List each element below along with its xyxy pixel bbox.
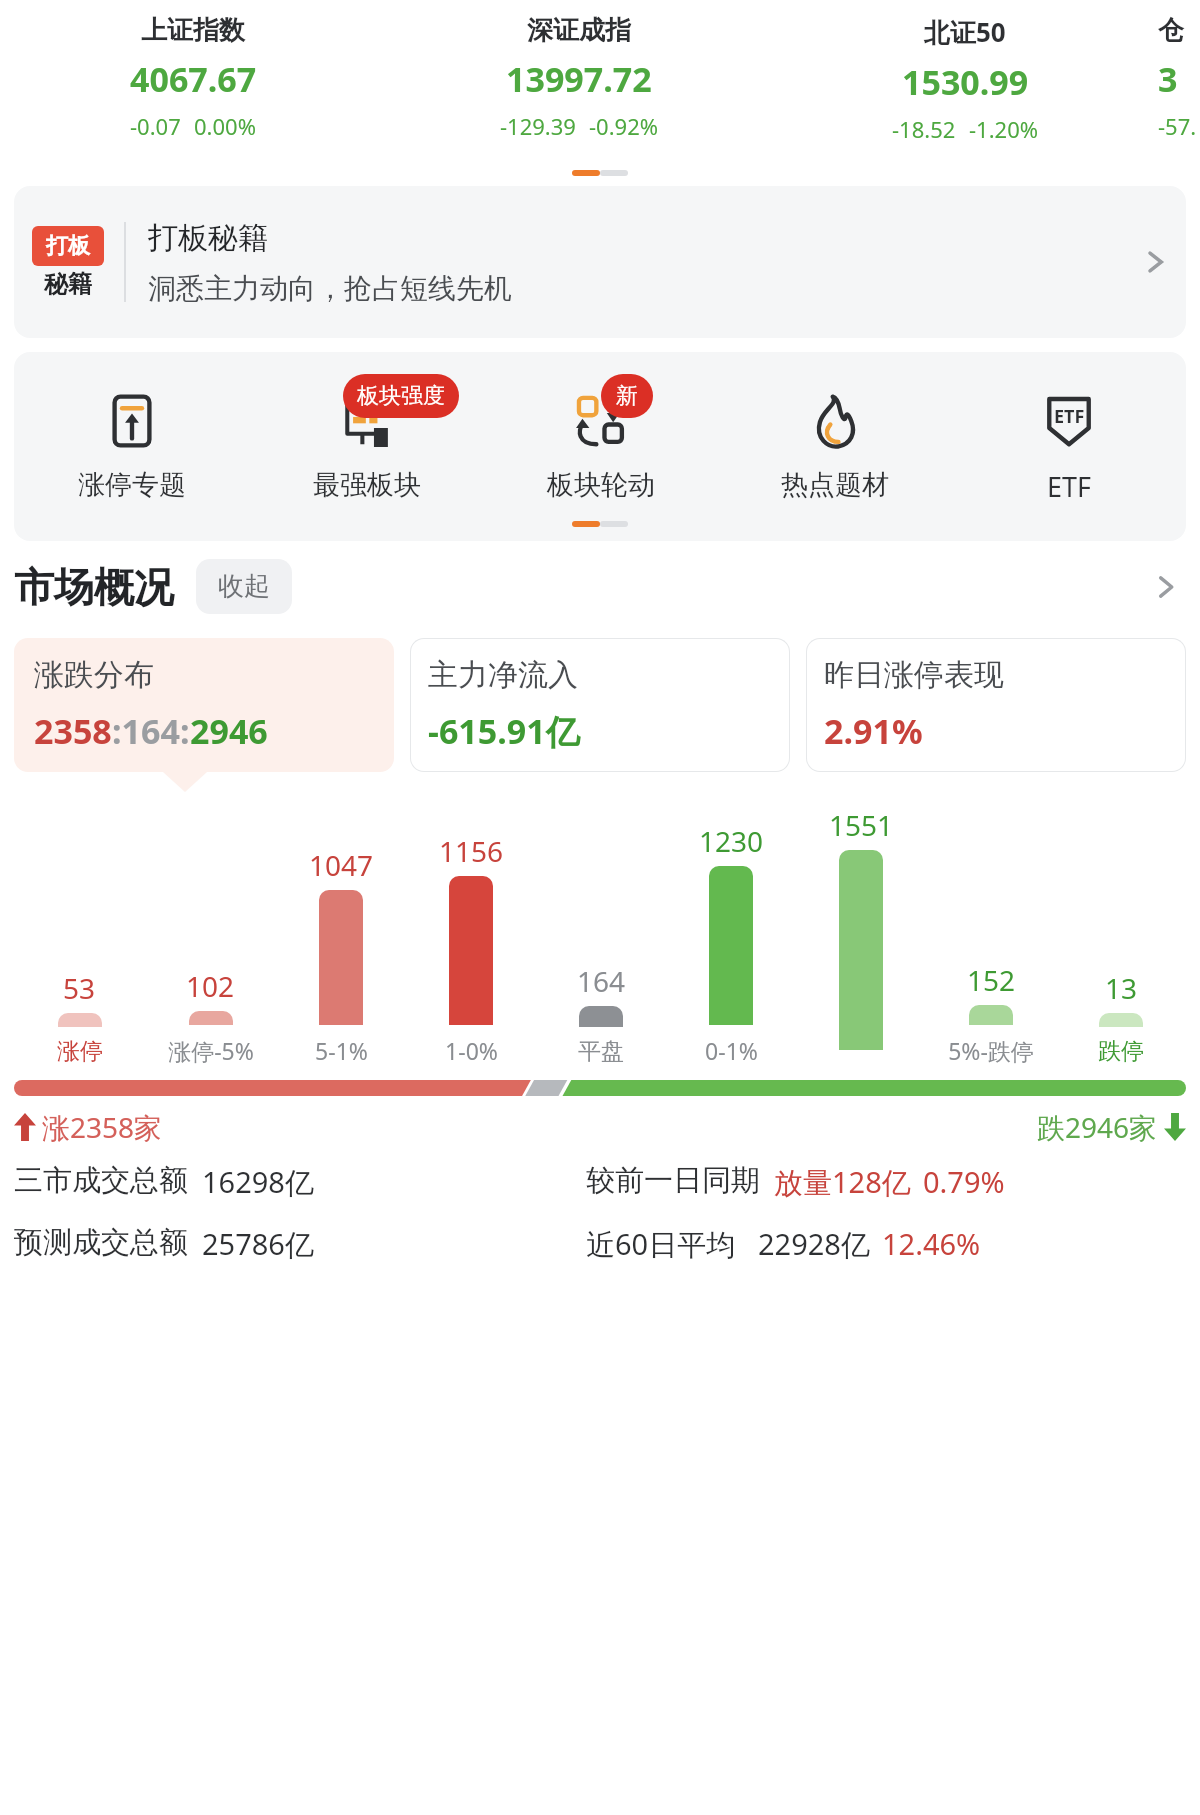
button[interactable]: 涨停专题 [14,378,249,502]
staticText: 16298亿 [202,1162,314,1202]
staticText: 涨停 [57,1037,103,1066]
button[interactable]: 上证指数 [0,14,386,141]
staticText: 预测成交总额 [14,1224,188,1261]
staticText: ETF [1047,468,1092,505]
staticText: 深证成指 [527,14,631,47]
staticText: 主力净流入 [428,656,578,694]
staticText: 2.91% [824,708,923,754]
button[interactable]: 热点题材 [718,378,952,502]
button[interactable]: 新 [484,378,718,502]
staticText: 收起 [218,570,270,603]
staticText: 涨停专题 [78,468,186,502]
staticText: 5-1% [315,1035,368,1066]
staticText: ETF [1054,404,1085,429]
staticText: 2946 [190,708,268,754]
staticText: 0.00% [194,111,256,141]
staticText: 北证50 [924,14,1006,50]
staticText: 1551 [829,806,894,844]
button[interactable]: 昨日涨停表现 [806,638,1186,772]
staticText: 22928亿 [758,1224,870,1264]
staticText: 1156 [439,832,504,870]
staticText: 洞悉主力动向，抢占短线先机 [148,271,512,306]
staticText: -129.39 [500,111,576,141]
staticText: 跌2946家 [1037,1108,1158,1146]
staticText: 13 [1105,969,1138,1007]
staticText: 4067.67 [130,56,257,102]
staticText: 1530.99 [902,59,1029,105]
staticText: -615.91亿 [428,708,580,754]
staticText: -57. [1158,111,1197,141]
staticText: 仓 [1158,14,1184,47]
staticText: -18.52 [892,114,956,144]
staticText: 53 [63,969,96,1007]
staticText: 最强板块 [313,468,421,502]
button[interactable]: ETF [952,378,1186,505]
button[interactable]: More [1146,567,1186,607]
staticText: 25786亿 [202,1224,314,1264]
staticText: :164: [112,708,190,754]
staticText: 热点题材 [781,468,889,502]
staticText: 164 [577,962,626,1000]
staticText: 打板秘籍 [148,219,268,257]
button[interactable]: 板块强度 [249,378,484,502]
staticText: 3 [1158,56,1178,102]
staticText: 昨日涨停表现 [824,656,1004,694]
staticText: 12.46% [882,1224,981,1263]
button[interactable]: 北证50 [772,14,1158,144]
button[interactable]: 打板 [14,186,1186,338]
staticText: -1.20% [969,114,1039,144]
staticText: 秘籍 [44,269,92,299]
staticText: -0.92% [589,111,659,141]
staticText: 1-0% [445,1035,498,1066]
staticText: -0.07 [130,111,181,141]
staticText: 板块强度 [357,382,445,410]
staticText: 1230 [699,822,764,860]
staticText: 152 [967,961,1016,999]
staticText: 较前一日同期 [586,1162,760,1199]
staticText: 1047 [309,846,374,884]
staticText: 涨跌分布 [34,656,154,694]
staticText: 打板 [46,232,90,260]
staticText: 新 [616,382,638,410]
staticText: 上证指数 [141,14,245,47]
staticText: 涨停-5% [168,1035,254,1066]
staticText: 0-1% [705,1035,758,1066]
staticText: 市场概况 [14,562,174,612]
staticText: 5%-跌停 [948,1035,1034,1066]
button[interactable]: 主力净流入 [410,638,790,772]
staticText: 三市成交总额 [14,1162,188,1199]
staticText: 2358 [34,708,112,754]
button[interactable]: 仓 [1158,14,1200,141]
staticText: 跌停 [1098,1037,1144,1066]
staticText: 放量128亿 [774,1162,911,1202]
staticText: 平盘 [578,1037,624,1066]
staticText: 102 [186,967,235,1005]
staticText: 近60日平均 [586,1224,736,1264]
button[interactable]: 深证成指 [386,14,772,141]
button[interactable]: 收起 [196,559,292,614]
button[interactable]: 涨跌分布 [14,638,394,772]
staticText: 涨2358家 [42,1108,163,1146]
staticText: 板块轮动 [547,468,655,502]
staticText: 13997.72 [506,56,652,102]
staticText: 0.79% [923,1162,1005,1201]
